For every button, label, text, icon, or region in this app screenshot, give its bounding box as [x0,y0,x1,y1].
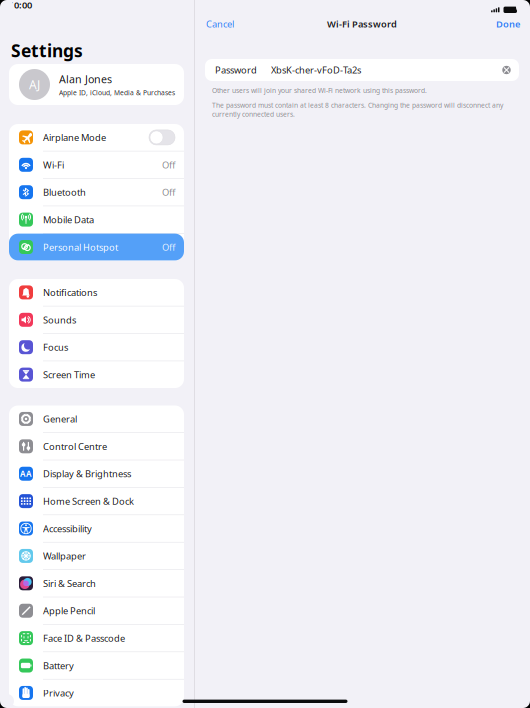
staticText: Battery [43,659,74,672]
button[interactable]: Done [492,14,520,34]
button[interactable]: AA [9,460,184,487]
staticText: Password [215,64,257,76]
button[interactable]: Control Centre [9,433,184,460]
staticText: AA [20,468,32,479]
staticText: Screen Time [43,368,95,381]
staticText: Settings [11,39,83,62]
button[interactable]: Cancel [206,14,238,34]
button[interactable]: Airplane Mode [9,124,184,151]
button[interactable]: Siri & Search [9,570,184,597]
button[interactable]: Wallpaper [9,542,184,569]
staticText: Cancel [206,18,234,30]
staticText: XbsK-cher-vFoD-Ta2s [271,64,361,76]
button[interactable]: Wi-Fi [9,151,184,178]
button[interactable]: Privacy [9,679,184,706]
staticText: Airplane Mode [43,131,106,144]
staticText: Off [162,186,175,198]
staticText: Sounds [43,314,76,326]
staticText: Siri & Search [43,577,96,589]
staticText: Wi-Fi Password [327,18,397,30]
staticText: Focus [43,341,68,353]
button[interactable]: Home Screen & Dock [9,488,184,514]
button[interactable]: Face ID & Passcode [9,625,184,651]
staticText: 10:00 [9,0,32,11]
button[interactable]: Accessibility [9,515,184,542]
staticText: Other users will join your shared Wi-Fi … [212,86,427,95]
staticText: Face ID & Passcode [43,632,125,644]
button[interactable]: Focus [9,334,184,361]
staticText: Off [162,159,175,171]
button[interactable]: Mobile Data [9,206,184,233]
staticText: Accessibility [43,522,92,535]
button[interactable]: Battery [9,652,184,679]
staticText: Wallpaper [43,550,86,562]
staticText: Apple Pencil [43,604,95,617]
button[interactable]: Personal Hotspot [9,234,184,260]
staticText: Bluetooth [43,186,86,198]
button[interactable]: Apple Pencil [9,597,184,624]
staticText: AJ [29,76,40,92]
staticText: Off [162,241,175,253]
button[interactable]: General [9,405,184,432]
staticText: Display & Brightness [43,467,131,480]
staticText: Home Screen & Dock [43,495,134,507]
button[interactable]: Bluetooth [9,179,184,206]
button[interactable]: Clear text [501,64,512,75]
staticText: Done [496,18,520,30]
staticText: Personal Hotspot [43,241,118,253]
staticText: Wi-Fi [43,159,64,171]
button[interactable]: Notifications [9,279,184,306]
staticText: General [43,413,77,425]
staticText: Mobile Data [43,213,94,226]
staticText: Control Centre [43,440,107,452]
staticText: Privacy [43,687,74,699]
staticText: Apple ID, iCloud, Media & Purchases [59,88,175,97]
button[interactable]: Sounds [9,306,184,333]
staticText: Notifications [43,286,97,299]
staticText: The password must contain at least 8 cha… [212,101,503,119]
staticText: Alan Jones [59,72,112,86]
button[interactable]: AJ [9,64,184,105]
button[interactable]: Screen Time [9,361,184,388]
